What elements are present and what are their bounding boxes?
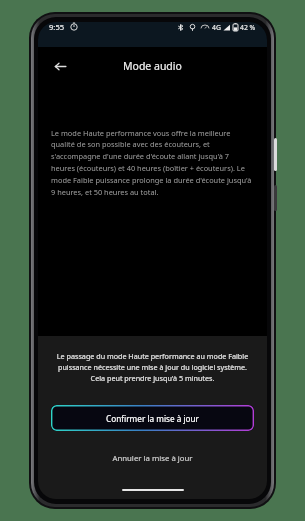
- staticText: 4G: [212, 23, 221, 32]
- staticText: Le passage du mode Haute performance au …: [54, 351, 251, 383]
- staticText: Confirmer la mise à jour: [106, 413, 199, 424]
- staticText: 9:55: [49, 22, 65, 32]
- staticText: Le mode Haute performance vous offre la …: [51, 128, 254, 197]
- staticText: 42 %: [240, 23, 256, 32]
- button[interactable]: Confirmer la mise à jour: [51, 405, 254, 431]
- button[interactable]: Retour: [46, 52, 74, 80]
- button[interactable]: Annuler la mise à jour: [51, 447, 254, 469]
- staticText: Mode audio: [123, 59, 182, 73]
- staticText: Annuler la mise à jour: [112, 453, 193, 464]
